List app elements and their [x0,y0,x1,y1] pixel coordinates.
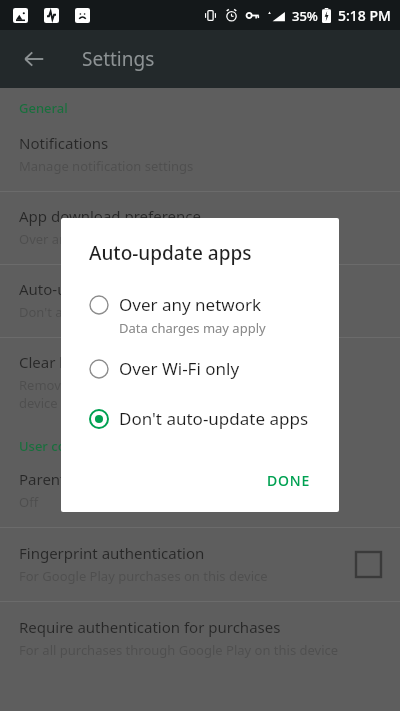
staticText: General [19,99,68,117]
staticText: Over any network [19,230,128,248]
button[interactable]: Notifications [0,121,400,191]
staticText: Fingerprint authentication [19,543,205,563]
button[interactable]: Over Wi-Fi only [61,350,339,387]
staticText: Auto-update apps [19,279,146,299]
staticText: Over any network [119,293,262,316]
staticText: For Google Play purchases on this device [19,567,268,585]
staticText: 5:18 PM [338,6,391,25]
staticText: Manage notification settings [19,157,194,175]
staticText: Auto-update apps [89,240,252,266]
button[interactable]: Auto-update apps [0,265,400,337]
staticText: Settings [82,46,155,72]
button[interactable]: Clear local search history [0,338,400,426]
staticText: Off [19,493,39,511]
staticText: Notifications [19,133,109,153]
button[interactable]: Don't auto-update apps [61,400,339,437]
button[interactable]: DONE [259,463,319,498]
staticText: Don't auto-update apps [119,407,309,430]
button[interactable]: Fingerprint authentication [0,528,400,601]
staticText: App download preference [19,206,201,226]
button[interactable]: Over any network [61,286,339,344]
button[interactable]: App download preference [0,192,400,264]
button[interactable]: Back [14,39,54,79]
staticText: Remove the searches you have performed o… [19,376,322,412]
staticText: User controls [19,437,102,455]
button[interactable]: Parental controls [0,459,400,527]
staticText: Require authentication for purchases [19,617,281,637]
button[interactable]: Require authentication for purchases [0,602,400,673]
staticText: Data charges may apply [119,319,266,337]
staticText: Clear local search history [19,352,195,372]
staticText: For all purchases through Google Play on… [19,641,339,659]
staticText: 35% [292,7,318,25]
staticText: Over Wi-Fi only [119,357,240,380]
staticText: Parental controls [19,469,139,489]
staticText: Don't auto-update apps [19,303,164,321]
staticText: DONE [267,471,311,490]
